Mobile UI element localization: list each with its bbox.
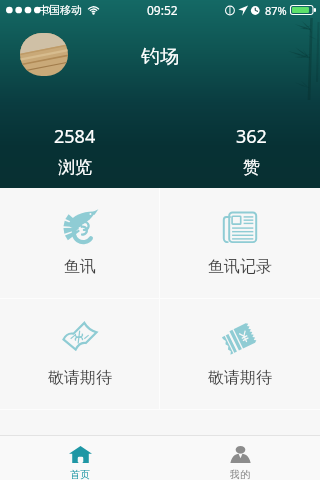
staticText: 敬请期待: [208, 368, 272, 388]
other: 敬请期待: [222, 320, 258, 356]
button[interactable]: 首页: [0, 436, 160, 480]
staticText: 362: [236, 124, 267, 149]
staticText: 首页: [70, 468, 90, 480]
button[interactable]: 我的: [160, 436, 320, 480]
staticText: 浏览: [58, 157, 92, 178]
button[interactable]: 鱼讯: [0, 188, 159, 298]
staticText: 2584: [54, 124, 96, 149]
button[interactable]: 敬请期待: [0, 299, 159, 409]
staticText: 钓场: [141, 45, 179, 69]
other: 敬请期待: [62, 320, 98, 356]
other: 鱼讯记录: [222, 209, 258, 245]
staticText: 我的: [230, 468, 250, 480]
staticText: 中国移动: [38, 3, 82, 17]
staticText: 鱼讯记录: [208, 257, 272, 277]
staticText: 87%: [265, 3, 287, 18]
staticText: 鱼讯: [64, 257, 96, 277]
other: 鱼讯: [62, 209, 98, 245]
button[interactable]: 敬请期待: [160, 299, 320, 409]
staticText: 09:52: [147, 2, 178, 18]
staticText: 赞: [243, 157, 260, 178]
staticText: 敬请期待: [48, 368, 112, 388]
button[interactable]: 鱼讯记录: [160, 188, 320, 298]
